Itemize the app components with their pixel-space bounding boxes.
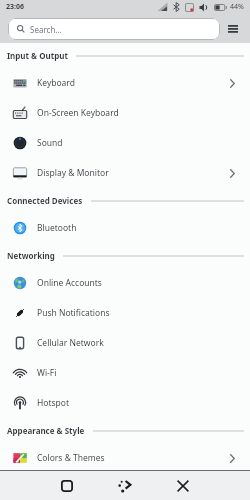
button[interactable]: Search... <box>8 18 220 40</box>
button[interactable]: Sound <box>0 128 250 158</box>
staticText: Appearance & Style <box>7 425 85 436</box>
button[interactable]: Hotspot <box>0 388 250 418</box>
staticText: Wi-Fi <box>37 367 57 379</box>
button[interactable] <box>53 472 81 500</box>
staticText: Connected Devices <box>7 195 83 206</box>
staticText: Online Accounts <box>37 277 102 289</box>
staticText: Push Notifications <box>37 307 110 319</box>
staticText: Bluetooth <box>37 222 77 234</box>
button[interactable]: Colors & Themes <box>0 443 250 473</box>
staticText: On-Screen Keyboard <box>37 107 119 119</box>
button[interactable]: On-Screen Keyboard <box>0 98 250 128</box>
staticText: Keyboard <box>37 77 75 89</box>
button[interactable] <box>220 16 246 42</box>
staticText: Input & Output <box>7 50 68 61</box>
staticText: Hotspot <box>37 397 70 409</box>
staticText: 23:06 <box>6 2 24 12</box>
button[interactable]: Push Notifications <box>0 298 250 328</box>
button[interactable]: Cellular Network <box>0 328 250 358</box>
button[interactable]: Online Accounts <box>0 268 250 298</box>
button[interactable] <box>169 472 197 500</box>
staticText: Colors & Themes <box>37 452 105 464</box>
button[interactable]: Keyboard <box>0 68 250 98</box>
button[interactable]: Display & Monitor <box>0 158 250 188</box>
staticText: Networking <box>7 250 55 261</box>
staticText: Sound <box>37 137 63 149</box>
button[interactable]: Wi-Fi <box>0 358 250 388</box>
staticText: Search... <box>30 24 62 35</box>
staticText: Display & Monitor <box>37 167 109 179</box>
button[interactable]: Bluetooth <box>0 213 250 243</box>
staticText: 44% <box>230 2 244 12</box>
button[interactable] <box>111 472 139 500</box>
staticText: Cellular Network <box>37 337 104 349</box>
